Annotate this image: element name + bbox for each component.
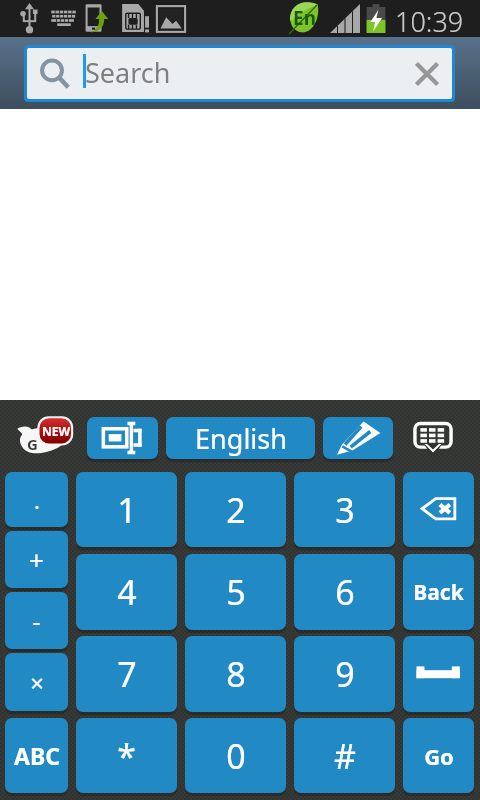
- staticText: +: [29, 542, 44, 577]
- staticText: Go: [424, 741, 454, 771]
- button[interactable]: Hide keyboard: [403, 417, 463, 459]
- button[interactable]: Clear search: [407, 54, 447, 94]
- staticText: .: [34, 485, 40, 515]
- staticText: Search: [85, 54, 171, 91]
- staticText: -: [32, 603, 41, 638]
- staticText: 9: [335, 651, 355, 697]
- staticText: #: [334, 733, 356, 779]
- staticText: 7: [117, 651, 137, 697]
- button[interactable]: 1: [76, 472, 177, 547]
- staticText: 3: [335, 487, 355, 533]
- staticText: NEW: [42, 423, 71, 439]
- button[interactable]: Space: [403, 636, 474, 712]
- button[interactable]: 2: [185, 472, 286, 547]
- button[interactable]: 8: [185, 636, 286, 712]
- button[interactable]: New: [12, 417, 78, 459]
- button[interactable]: 7: [76, 636, 177, 712]
- staticText: ×: [30, 666, 44, 699]
- button[interactable]: Back: [403, 554, 474, 630]
- button[interactable]: English: [166, 417, 315, 459]
- button[interactable]: 4: [76, 554, 177, 630]
- button[interactable]: -: [5, 592, 68, 649]
- button[interactable]: Search: [27, 48, 452, 99]
- button[interactable]: Handwriting: [323, 417, 393, 459]
- button[interactable]: ×: [5, 653, 68, 711]
- button[interactable]: #: [294, 718, 395, 793]
- button[interactable]: 6: [294, 554, 395, 630]
- staticText: 1: [117, 487, 137, 533]
- button[interactable]: Resize keyboard: [87, 417, 158, 459]
- button[interactable]: 3: [294, 472, 395, 547]
- staticText: En: [293, 5, 316, 31]
- staticText: *: [117, 733, 136, 779]
- button[interactable]: 5: [185, 554, 286, 630]
- button[interactable]: Go: [403, 718, 474, 793]
- staticText: 6: [335, 569, 355, 615]
- staticText: ABC: [14, 740, 60, 771]
- staticText: 10:39: [395, 3, 464, 40]
- staticText: 2: [226, 487, 246, 533]
- staticText: 0: [226, 733, 246, 779]
- staticText: Back: [413, 578, 464, 607]
- staticText: G: [27, 434, 38, 454]
- button[interactable]: .: [5, 472, 68, 527]
- staticText: 4: [117, 569, 137, 615]
- button[interactable]: ABC: [5, 718, 68, 793]
- button[interactable]: 0: [185, 718, 286, 793]
- button[interactable]: 9: [294, 636, 395, 712]
- button[interactable]: Backspace: [403, 472, 474, 547]
- staticText: 8: [226, 651, 246, 697]
- button[interactable]: *: [76, 718, 177, 793]
- button[interactable]: +: [5, 531, 68, 588]
- staticText: English: [195, 420, 287, 457]
- staticText: 5: [226, 569, 246, 615]
